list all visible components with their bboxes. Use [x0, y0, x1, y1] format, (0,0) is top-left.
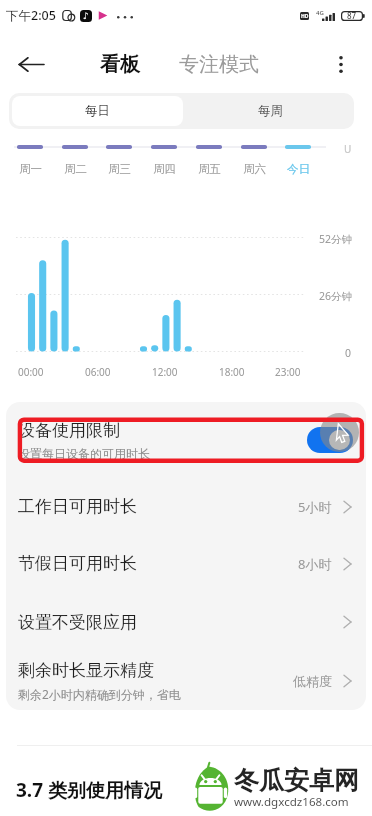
staticText: 06:00	[85, 365, 111, 379]
staticText: 23:00	[275, 365, 301, 379]
staticText: 每周	[258, 103, 283, 119]
staticText: 设置每日设备的可用时长	[18, 446, 150, 461]
button[interactable]: 节假日可用时长	[6, 535, 366, 592]
button[interactable]: Toggle device usage limit	[307, 427, 353, 453]
button[interactable]: 今日	[277, 141, 319, 179]
button[interactable]: 设备使用限制	[6, 402, 366, 478]
staticText: 周一	[19, 162, 42, 176]
staticText: 设备使用限制	[18, 420, 120, 441]
staticText: 低精度	[293, 673, 332, 689]
button[interactable]: 周五	[188, 141, 230, 179]
staticText: 今日	[287, 162, 310, 176]
staticText: 每日	[85, 103, 110, 119]
staticText: 周五	[198, 162, 221, 176]
button[interactable]: 每日	[12, 96, 183, 126]
button[interactable]: 周三	[98, 141, 140, 179]
staticText: 12:00	[152, 365, 178, 379]
staticText: 周四	[153, 162, 176, 176]
staticText: 18:00	[219, 365, 245, 379]
button[interactable]: 剩余时长显示精度	[6, 652, 366, 710]
button[interactable]: 每周	[186, 93, 354, 129]
button[interactable]: 周六	[233, 141, 275, 179]
button[interactable]: 工作日可用时长	[6, 478, 366, 535]
staticText: 下午2:05	[6, 7, 56, 24]
staticText: 冬瓜安卓网	[234, 765, 359, 796]
button[interactable]: 周二	[54, 141, 96, 179]
staticText: 3.7 类别使用情况	[16, 777, 163, 803]
staticText: 8小时	[298, 555, 332, 573]
staticText: 看板	[100, 52, 140, 77]
staticText: 工作日可用时长	[18, 496, 137, 517]
staticText: 周六	[243, 162, 266, 176]
button[interactable]: More options	[320, 44, 361, 85]
button[interactable]: 专注模式	[179, 48, 259, 81]
staticText: 周二	[64, 162, 87, 176]
button[interactable]: 周一	[9, 141, 51, 179]
button[interactable]: 周四	[143, 141, 185, 179]
staticText: 4G	[316, 9, 324, 17]
staticText: www.dgxcdz168.com	[234, 794, 349, 810]
button[interactable]: 设置不受限应用	[6, 592, 366, 652]
staticText: ♪	[83, 11, 89, 21]
staticText: U	[344, 142, 352, 156]
staticText: 设置不受限应用	[18, 612, 137, 633]
button[interactable]: Back	[11, 44, 52, 85]
staticText: 节假日可用时长	[18, 553, 137, 574]
staticText: 0	[345, 346, 352, 360]
staticText: 87	[347, 10, 357, 21]
staticText: 剩余时长显示精度	[18, 660, 154, 681]
staticText: 专注模式	[179, 52, 259, 77]
staticText: 5小时	[298, 498, 332, 516]
staticText: HD	[301, 13, 309, 20]
staticText: 00:00	[18, 365, 44, 379]
staticText: 52分钟	[319, 232, 353, 246]
button[interactable]: 看板	[100, 48, 140, 81]
staticText: 剩余2小时内精确到分钟，省电	[18, 686, 181, 702]
staticText: 周三	[108, 162, 131, 176]
staticText: 26分钟	[319, 289, 353, 303]
